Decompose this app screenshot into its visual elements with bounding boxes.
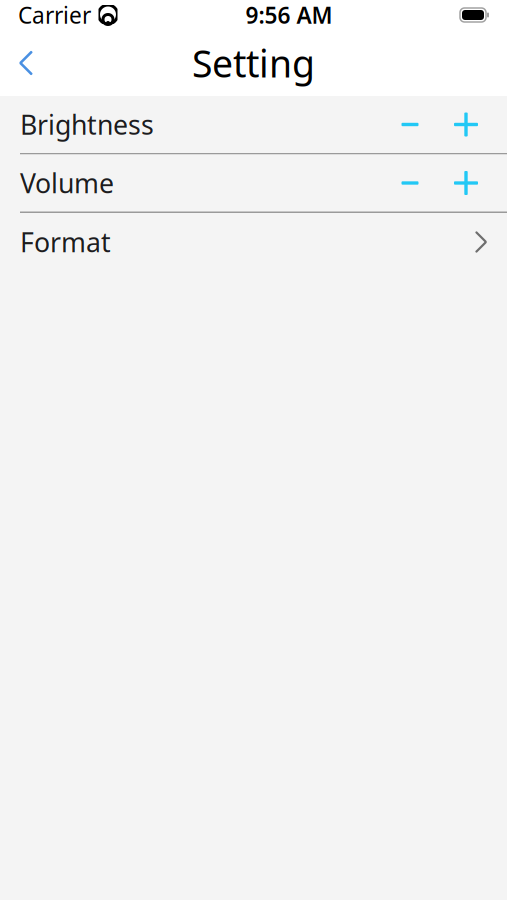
- staticText: Carrier: [18, 0, 91, 30]
- button[interactable]: Increase Volume: [438, 154, 494, 211]
- staticText: Volume: [20, 165, 114, 201]
- button[interactable]: Decrease Brightness: [382, 96, 438, 153]
- button[interactable]: Back: [0, 35, 52, 91]
- button[interactable]: Increase Brightness: [438, 96, 494, 153]
- button[interactable]: Format: [0, 213, 507, 271]
- staticText: Format: [20, 224, 111, 260]
- staticText: Setting: [192, 38, 315, 88]
- staticText: Brightness: [20, 107, 154, 142]
- staticText: 9:56 AM: [245, 0, 332, 30]
- button[interactable]: Decrease Volume: [382, 154, 438, 211]
